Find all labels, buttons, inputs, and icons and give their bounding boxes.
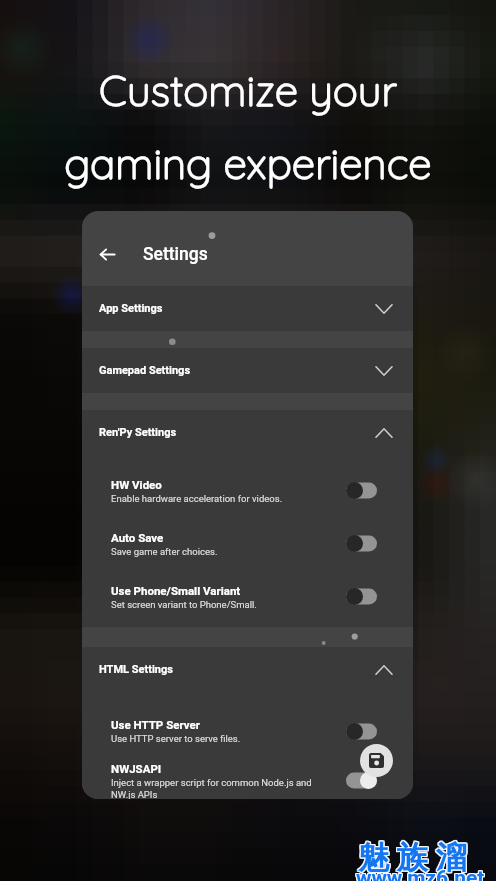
staticText: Settings <box>143 244 208 265</box>
staticText: www.mz6.net <box>355 865 484 881</box>
staticText: 魅 族 溜 <box>359 837 468 876</box>
button[interactable]: Back <box>87 234 127 274</box>
staticText: Set screen variant to Phone/Small. <box>111 599 257 610</box>
staticText: 魅 族 溜 <box>359 838 468 877</box>
staticText: 魅 族 溜 <box>358 839 467 878</box>
staticText: Inject a wrapper script for common Node.… <box>111 777 312 799</box>
button[interactable]: Auto Save <box>82 517 413 570</box>
button[interactable]: HTML Settings <box>82 647 413 692</box>
staticText: Use Phone/Small Variant <box>111 584 241 597</box>
staticText: Ren'Py Settings <box>99 426 177 439</box>
staticText: www.mz6.net <box>356 865 485 881</box>
staticText: www.mz6.net <box>356 866 485 881</box>
staticText: Gamepad Settings <box>99 364 191 377</box>
staticText: 魅 族 溜 <box>357 837 466 876</box>
staticText: HW Video <box>111 478 162 491</box>
staticText: www.mz6.net <box>357 867 486 881</box>
staticText: 魅 族 溜 <box>357 839 466 878</box>
staticText: HTML Settings <box>99 663 173 676</box>
staticText: www.mz6.net <box>356 867 485 881</box>
button[interactable]: HW Video <box>82 464 413 517</box>
staticText: Save game after choices. <box>111 546 218 557</box>
button[interactable]: Gamepad Settings <box>82 348 413 393</box>
staticText: App Settings <box>99 302 163 315</box>
staticText: Enable hardware acceleration for videos. <box>111 493 283 504</box>
button[interactable]: Use HTTP Server <box>82 700 413 762</box>
staticText: Use HTTP Server <box>111 718 200 731</box>
staticText: gaming experience <box>64 137 432 190</box>
staticText: www.mz6.net <box>355 866 484 881</box>
staticText: 魅 族 溜 <box>359 839 468 878</box>
staticText: NWJSAPI <box>111 762 162 775</box>
button[interactable]: Save <box>360 744 393 777</box>
button[interactable]: NWJSAPI <box>82 762 413 799</box>
staticText: www.mz6.net <box>355 867 484 881</box>
staticText: www.mz6.net <box>357 865 486 881</box>
staticText: 魅 族 溜 <box>358 838 467 877</box>
staticText: 魅 族 溜 <box>357 838 466 877</box>
staticText: Auto Save <box>111 531 164 544</box>
button[interactable]: App Settings <box>82 286 413 331</box>
button[interactable]: Ren'Py Settings <box>82 410 413 455</box>
staticText: 魅 族 溜 <box>358 837 467 876</box>
staticText: Customize your <box>99 64 397 117</box>
staticText: www.mz6.net <box>357 866 486 881</box>
button[interactable]: Use Phone/Small Variant <box>82 570 413 623</box>
staticText: Use HTTP server to serve files. <box>111 733 241 744</box>
